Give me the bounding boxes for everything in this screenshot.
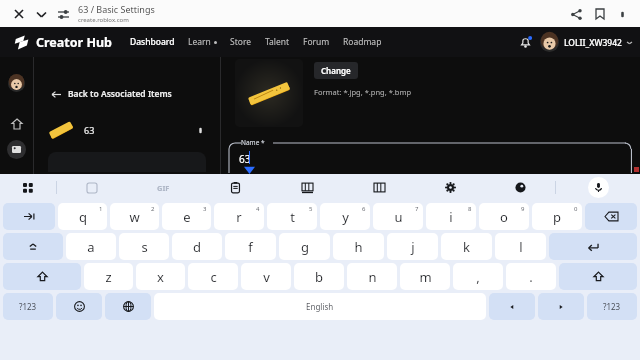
button[interactable]: Back to Associated Items (52, 88, 172, 100)
button[interactable]: Backspace (585, 203, 637, 230)
staticText: i (449, 208, 453, 226)
button[interactable]: Talent (265, 36, 290, 48)
button[interactable]: v (241, 263, 291, 290)
button[interactable]: y (320, 203, 370, 230)
button[interactable]: g (279, 233, 330, 260)
button[interactable]: o (479, 203, 529, 230)
button[interactable]: h (333, 233, 384, 260)
button[interactable]: s (119, 233, 169, 260)
button[interactable]: Item menu (192, 122, 208, 138)
button[interactable]: n (347, 263, 397, 290)
button[interactable]: Enter (549, 233, 637, 260)
button[interactable]: 63 (48, 122, 208, 138)
button[interactable]: Learn (188, 36, 217, 48)
staticText: Back to Associated Items (68, 88, 172, 100)
button[interactable]: u (373, 203, 423, 230)
staticText: z (105, 268, 112, 286)
staticText: Talent (265, 36, 290, 48)
button[interactable]: a (66, 233, 116, 260)
button[interactable]: Clipboard (199, 174, 271, 201)
button[interactable]: Page settings (52, 3, 74, 25)
button[interactable]: m (400, 263, 450, 290)
button[interactable]: GIF (127, 174, 199, 201)
staticText: d (193, 238, 201, 256)
button[interactable]: Symbols (587, 293, 637, 320)
button[interactable]: Emoji (56, 293, 102, 320)
button[interactable]: d (172, 233, 222, 260)
button[interactable]: Tab (3, 203, 55, 230)
button[interactable]: More options (612, 4, 632, 24)
button[interactable]: English (154, 293, 486, 320)
button[interactable]: Settings (415, 174, 485, 201)
button[interactable]: r (214, 203, 264, 230)
button[interactable]: Themes (485, 174, 555, 201)
staticText: 4 (256, 205, 260, 213)
button[interactable]: Translate (271, 174, 343, 201)
button[interactable]: c (188, 263, 238, 290)
button[interactable]: Home (7, 114, 27, 134)
staticText: 2 (151, 205, 155, 213)
button[interactable]: b (294, 263, 344, 290)
button[interactable]: Store (230, 36, 252, 48)
staticText: 63 / Basic Settings (78, 3, 155, 15)
button[interactable]: z (84, 263, 133, 290)
button[interactable]: Symbols (3, 293, 53, 320)
staticText: ?123 (19, 301, 37, 312)
button[interactable]: LOLII_XW3942 (540, 33, 632, 52)
staticText: 3 (203, 205, 207, 213)
button[interactable]: k (441, 233, 492, 260)
staticText: h (354, 238, 363, 256)
button[interactable]: Cursor left (489, 293, 535, 320)
button[interactable]: q (58, 203, 107, 230)
button[interactable]: f (225, 233, 276, 260)
button[interactable]: Forum (303, 36, 330, 48)
staticText: m (419, 268, 432, 286)
staticText: c (210, 268, 217, 286)
staticText: y (342, 208, 349, 226)
button[interactable]: Text editing (343, 174, 415, 201)
button[interactable]: e (162, 203, 211, 230)
button[interactable]: i (426, 203, 476, 230)
button[interactable]: Language (105, 293, 151, 320)
button[interactable]: . (506, 263, 556, 290)
button[interactable]: t (267, 203, 317, 230)
button[interactable]: Stickers (57, 174, 127, 201)
staticText: ?123 (603, 301, 621, 312)
button[interactable]: p (532, 203, 582, 230)
staticText: b (315, 268, 323, 286)
staticText: r (236, 208, 242, 226)
staticText: k (463, 238, 470, 256)
staticText: x (157, 268, 164, 286)
button[interactable]: Voice input (556, 174, 640, 201)
staticText: 9 (521, 205, 525, 213)
button[interactable]: , (453, 263, 503, 290)
staticText: u (394, 208, 403, 226)
button[interactable]: Notifications (514, 31, 536, 53)
button[interactable]: Change (314, 62, 358, 79)
staticText: s (141, 238, 148, 256)
staticText: 1 (99, 205, 103, 213)
button[interactable]: Close (8, 3, 30, 25)
button[interactable]: Caps lock (3, 233, 63, 260)
button[interactable]: Share (564, 2, 588, 26)
staticText: Learn (188, 36, 211, 48)
button[interactable]: Cursor right (538, 293, 584, 320)
button[interactable]: x (136, 263, 185, 290)
button[interactable]: Dashboard (130, 36, 175, 48)
staticText: 8 (468, 205, 472, 213)
button[interactable]: j (387, 233, 438, 260)
button[interactable]: Roadmap (343, 36, 382, 48)
staticText: LOLII_XW3942 (564, 37, 622, 49)
button[interactable]: l (495, 233, 546, 260)
staticText: l (519, 238, 523, 256)
staticText: , (476, 268, 480, 286)
button[interactable]: Collapse (30, 3, 52, 25)
button[interactable]: Creations (7, 140, 26, 159)
staticText: f (248, 238, 253, 256)
button[interactable]: Shift (559, 263, 637, 290)
staticText: a (87, 238, 95, 256)
button[interactable]: Bookmark (588, 2, 612, 26)
button[interactable]: Shift (3, 263, 81, 290)
button[interactable]: Apps (0, 174, 56, 201)
button[interactable]: w (110, 203, 159, 230)
